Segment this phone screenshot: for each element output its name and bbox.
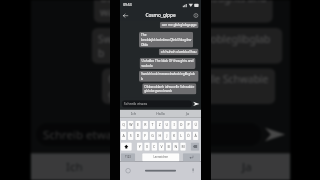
button[interactable]: Swobhlooblmeowobwbobleglibglabgla	[92, 28, 282, 64]
button[interactable]: Y	[137, 142, 143, 151]
button[interactable]: Hallo	[147, 110, 174, 118]
staticText: Q	[122, 123, 125, 127]
button[interactable]: Send	[261, 121, 289, 148]
staticText: Ö	[187, 133, 190, 138]
staticText: A	[122, 133, 125, 138]
staticText: 09:53	[123, 3, 132, 7]
button[interactable]: Ich	[120, 110, 147, 118]
staticText: wabolo	[100, 5, 135, 20]
button[interactable]: T	[150, 121, 155, 129]
button[interactable]: W	[128, 121, 134, 129]
staticText: Oblowablaeh iahwoelle Schwabie	[108, 72, 269, 86]
button[interactable]: X	[144, 142, 150, 151]
staticText: W	[129, 123, 133, 127]
button[interactable]: S	[128, 132, 134, 140]
button[interactable]: The	[139, 32, 193, 48]
staticText: wabolo	[142, 64, 153, 68]
staticText: E	[137, 123, 139, 127]
button[interactable]: J	[164, 132, 170, 140]
staticText: O	[180, 123, 183, 127]
staticText: V	[160, 144, 163, 149]
button[interactable]: Ü	[193, 121, 198, 129]
button[interactable]: Leerzeichen	[142, 153, 179, 161]
button[interactable]: E	[135, 121, 141, 129]
button[interactable]: U	[164, 121, 170, 129]
button[interactable]: Schreib etwas	[36, 123, 261, 146]
button[interactable]: K	[171, 132, 177, 140]
staticText: Ä	[194, 133, 197, 138]
button[interactable]: L	[178, 132, 184, 140]
button[interactable]: can me glubglabgapgo	[160, 22, 199, 28]
button[interactable]: C	[151, 142, 157, 151]
button[interactable]: O	[178, 121, 184, 129]
button[interactable]: R	[142, 121, 148, 129]
staticText: Y	[139, 144, 141, 149]
button[interactable]: Z	[157, 121, 162, 129]
staticText: Ich	[131, 111, 136, 116]
button[interactable]: Backspace	[191, 142, 199, 151]
button[interactable]: Schreib etwas	[122, 100, 192, 108]
button[interactable]: Hallo	[117, 153, 204, 179]
staticText: Uahalbo The blab Of thoughts and	[142, 59, 194, 63]
button[interactable]: F	[142, 132, 148, 140]
staticText: Cosmo_glppe	[145, 12, 176, 19]
button[interactable]: Emoji keyboard	[120, 161, 136, 180]
staticText: Ja	[186, 111, 189, 116]
staticText: Hallo	[147, 158, 175, 174]
button[interactable]: Shift	[121, 142, 132, 151]
staticText: T	[151, 123, 153, 127]
button[interactable]: N	[173, 142, 179, 151]
staticText: Ich	[66, 158, 83, 174]
staticText: Oblo	[141, 42, 148, 47]
staticText: Ü	[194, 123, 197, 127]
staticText: R	[144, 123, 146, 127]
button[interactable]: Contact info	[192, 12, 199, 19]
staticText: oh huhoh olwebballhou	[161, 50, 197, 54]
button[interactable]: P	[186, 121, 191, 129]
button[interactable]: H	[157, 132, 162, 140]
staticText: D	[137, 133, 139, 138]
button[interactable]: Enter	[183, 153, 200, 161]
staticText: P	[187, 123, 190, 127]
staticText: J	[166, 133, 167, 138]
button[interactable]: Oblowablaeh iahwoelle Schwabie	[102, 68, 275, 104]
button[interactable]: G	[150, 132, 155, 140]
staticText: N	[174, 144, 177, 149]
staticText: U	[166, 123, 168, 127]
button[interactable]: I	[171, 121, 177, 129]
staticText: Ja	[242, 158, 252, 174]
button[interactable]: Ja	[174, 110, 201, 118]
staticText: C	[153, 144, 155, 149]
staticText: gblobegwoolowab	[144, 89, 172, 93]
button[interactable]: oh huhoh olwebballhou	[159, 49, 199, 55]
button[interactable]: M	[180, 142, 186, 151]
button[interactable]: Send	[192, 100, 201, 108]
staticText: Schreib etwas	[43, 126, 118, 142]
button[interactable]: Q	[121, 121, 126, 129]
button[interactable]: B	[166, 142, 171, 151]
button[interactable]: Ö	[186, 132, 191, 140]
staticText: can me glubglabgapgo	[162, 23, 197, 27]
button[interactable]: A	[121, 132, 126, 140]
button[interactable]: Ä	[193, 132, 198, 140]
staticText: G	[151, 133, 154, 138]
staticText: Oblowablaeh iahwoelle Schwabie	[144, 84, 194, 89]
staticText: K	[173, 133, 175, 138]
staticText: I	[173, 123, 175, 127]
staticText: b	[98, 46, 104, 61]
button[interactable]: ?123	[121, 153, 135, 161]
button[interactable]: Uahalbo The blab Of thoughts and	[94, 0, 273, 23]
staticText: Uahalbo The blab Of thoughts and	[100, 0, 266, 5]
button[interactable]: Swobhlooblmeowobwbobleglibglabgla	[139, 71, 199, 82]
button[interactable]: Uahalbo The blab Of thoughts and	[140, 58, 196, 69]
button[interactable]: V	[159, 142, 164, 151]
button[interactable]: Ja	[204, 153, 290, 179]
button[interactable]: Ich	[31, 153, 117, 179]
button[interactable]: Voice input	[185, 161, 201, 180]
staticText: X	[146, 144, 148, 149]
staticText: Leerzeichen	[153, 156, 168, 159]
button[interactable]: Oblowablaeh iahwoelle Schwabie	[142, 83, 196, 94]
staticText: b	[141, 76, 143, 81]
button[interactable]: D	[135, 132, 141, 140]
button[interactable]: Back	[121, 12, 129, 20]
